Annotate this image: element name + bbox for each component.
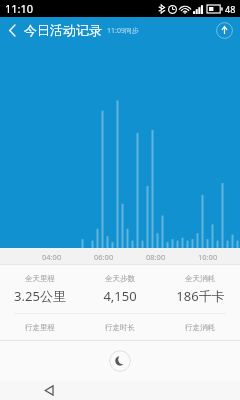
- button[interactable]: 全天消耗: [160, 272, 240, 307]
- staticText: 08:00: [146, 252, 166, 262]
- button[interactable]: Sleep: [109, 350, 131, 372]
- staticText: 全天里程: [25, 274, 55, 283]
- button[interactable]: 行走消耗: [160, 314, 240, 340]
- button[interactable]: 行走里程: [0, 314, 80, 340]
- button[interactable]: 全天步数: [80, 272, 160, 307]
- staticText: 行走消耗: [185, 323, 215, 332]
- button[interactable]: 行走时长: [80, 314, 160, 340]
- button[interactable]: 全天里程: [0, 272, 80, 307]
- staticText: 全天消耗: [185, 274, 215, 283]
- button[interactable]: Back: [0, 17, 24, 43]
- staticText: 今日活动记录: [24, 22, 102, 38]
- staticText: 行走里程: [25, 323, 55, 332]
- staticText: 行走时长: [105, 323, 135, 332]
- staticText: 11:10: [5, 1, 34, 16]
- staticText: 4,150: [103, 287, 137, 305]
- button[interactable]: Sync: [216, 22, 233, 39]
- staticText: 10:00: [198, 252, 218, 262]
- staticText: 186千卡: [176, 287, 225, 305]
- staticText: 11:09同步: [107, 26, 139, 36]
- staticText: 06:00: [94, 252, 114, 262]
- staticText: 04:00: [42, 252, 62, 262]
- staticText: 3.25公里: [14, 287, 66, 305]
- button[interactable]: Back: [38, 381, 60, 400]
- staticText: 48: [225, 3, 236, 15]
- staticText: 全天步数: [105, 274, 135, 283]
